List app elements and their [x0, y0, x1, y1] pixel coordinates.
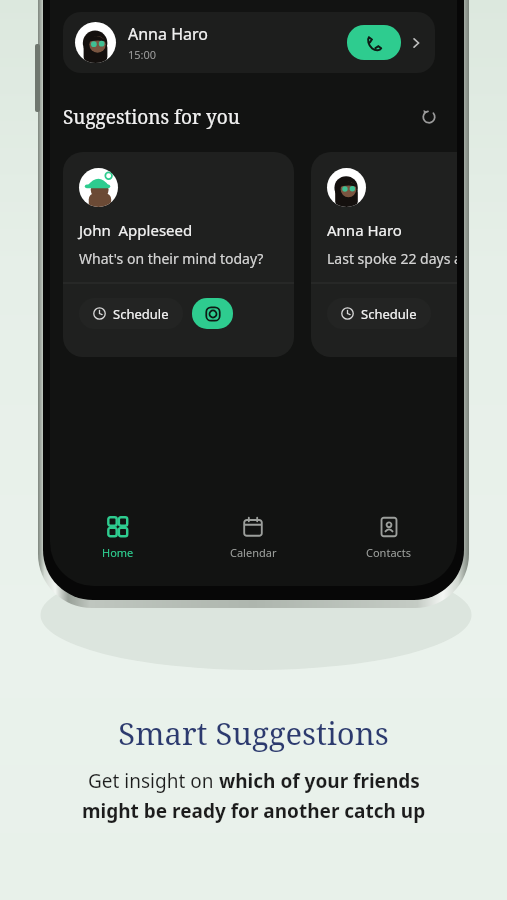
staticText: 15:00: [128, 47, 157, 62]
button[interactable]: Send a message: [192, 298, 233, 329]
staticText: might be ready for another catch up: [82, 798, 426, 824]
staticText: Home: [102, 545, 134, 560]
button[interactable]: Contacts: [321, 508, 457, 578]
staticText: Anna Haro: [327, 220, 402, 240]
button[interactable]: Anna Haro: [311, 152, 457, 357]
button[interactable]: Anna Haro: [63, 12, 435, 73]
button[interactable]: Call Anna Haro: [347, 25, 401, 60]
staticText: Suggestions for you: [63, 104, 240, 130]
button[interactable]: John Appleseed: [63, 152, 294, 357]
staticText: Smart Suggestions: [118, 712, 389, 754]
staticText: Contacts: [366, 545, 412, 560]
staticText: Last spoke 22 days ago: [327, 249, 457, 268]
staticText: Get insight on: [88, 768, 219, 794]
staticText: Schedule: [113, 305, 169, 323]
staticText: Anna Haro: [128, 23, 208, 45]
staticText: Schedule: [361, 305, 417, 323]
button[interactable]: Calendar: [185, 508, 321, 578]
button[interactable]: Refresh suggestions: [414, 102, 444, 132]
button[interactable]: Home: [50, 508, 185, 578]
staticText: Calendar: [230, 545, 277, 560]
button[interactable]: Schedule: [79, 298, 183, 329]
button[interactable]: Schedule: [327, 298, 431, 329]
staticText: What's on their mind today?: [79, 249, 264, 268]
staticText: John Appleseed: [79, 220, 193, 240]
staticText: which of your friends: [219, 768, 420, 794]
